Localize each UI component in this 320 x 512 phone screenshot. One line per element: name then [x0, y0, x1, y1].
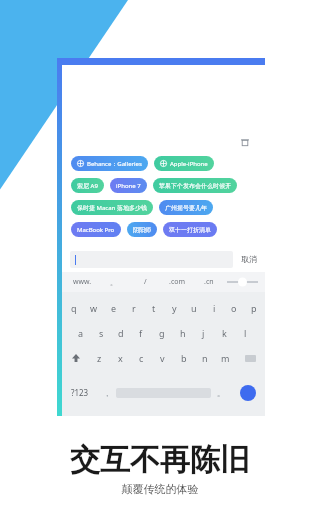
staticText: Behance：Galleries: [87, 160, 142, 168]
staticText: www.: [73, 277, 92, 287]
button[interactable]: www.: [67, 272, 98, 292]
button[interactable]: j: [193, 322, 214, 344]
staticText: 取消: [241, 254, 257, 264]
staticText: w: [90, 302, 98, 314]
button[interactable]: iPhone 7: [110, 178, 147, 193]
staticText: .cn: [204, 277, 214, 287]
button[interactable]: 双十一打折清单: [163, 222, 217, 237]
staticText: 。: [110, 278, 117, 287]
button[interactable]: e: [104, 297, 124, 319]
staticText: v: [160, 352, 165, 364]
staticText: 索尼 A9: [77, 182, 98, 190]
button[interactable]: Clear history: [238, 135, 252, 149]
staticText: 阴阳师: [133, 226, 151, 234]
button[interactable]: 广州摇号要几年: [159, 200, 213, 215]
staticText: 。: [217, 388, 225, 398]
staticText: ，: [103, 388, 111, 398]
staticText: q: [71, 302, 77, 314]
button[interactable]: b: [173, 347, 194, 369]
staticText: b: [181, 352, 187, 364]
button[interactable]: c: [131, 347, 152, 369]
button[interactable]: Shift: [62, 347, 89, 369]
button[interactable]: y: [164, 297, 184, 319]
button[interactable]: r: [124, 297, 144, 319]
button[interactable]: MacBook Pro: [71, 222, 121, 237]
staticText: iPhone 7: [116, 182, 141, 190]
staticText: a: [78, 327, 84, 339]
staticText: f: [139, 327, 143, 339]
button[interactable]: Behance：Galleries: [71, 156, 148, 171]
staticText: p: [251, 302, 257, 314]
staticText: 交互不再陈旧: [0, 441, 320, 479]
staticText: i: [213, 302, 216, 314]
button[interactable]: Search: [240, 385, 256, 401]
button[interactable]: .cn: [193, 272, 225, 292]
button[interactable]: l: [235, 322, 256, 344]
staticText: s: [99, 327, 104, 339]
staticText: d: [118, 327, 124, 339]
button[interactable]: h: [172, 322, 193, 344]
staticText: 保时捷 Macan 落地多少钱: [77, 204, 147, 212]
staticText: z: [97, 352, 102, 364]
button[interactable]: /: [129, 272, 161, 292]
button[interactable]: s: [91, 322, 111, 344]
staticText: 双十一打折清单: [169, 226, 211, 234]
button[interactable]: 取消: [241, 254, 257, 264]
staticText: e: [111, 302, 117, 314]
staticText: c: [139, 352, 144, 364]
button[interactable]: n: [194, 347, 215, 369]
staticText: /: [144, 277, 147, 287]
button[interactable]: Apple-iPhone: [154, 156, 214, 171]
staticText: .com: [169, 277, 186, 287]
button[interactable]: w: [84, 297, 104, 319]
button[interactable]: m: [215, 347, 236, 369]
button[interactable]: q: [63, 297, 84, 319]
button[interactable]: Backspace: [236, 347, 265, 369]
staticText: m: [221, 352, 230, 364]
staticText: 广州摇号要几年: [165, 204, 207, 212]
button[interactable]: ?123: [62, 369, 97, 416]
staticText: r: [132, 302, 136, 314]
button[interactable]: [70, 251, 233, 268]
button[interactable]: f: [131, 322, 151, 344]
staticText: 颠覆传统的体验: [0, 482, 320, 496]
button[interactable]: i: [204, 297, 224, 319]
staticText: j: [202, 327, 205, 339]
staticText: g: [159, 327, 165, 339]
button[interactable]: Adjust: [225, 272, 260, 292]
staticText: Apple-iPhone: [170, 160, 208, 168]
staticText: ?123: [71, 387, 89, 398]
button[interactable]: g: [151, 322, 172, 344]
button[interactable]: d: [111, 322, 131, 344]
button[interactable]: k: [214, 322, 235, 344]
button[interactable]: u: [184, 297, 204, 319]
staticText: y: [172, 302, 177, 314]
button[interactable]: p: [244, 297, 264, 319]
staticText: 苹果下个发布会什么时候开: [159, 182, 231, 190]
staticText: h: [180, 327, 186, 339]
button[interactable]: v: [152, 347, 173, 369]
button[interactable]: 保时捷 Macan 落地多少钱: [71, 200, 153, 215]
button[interactable]: 阴阳师: [127, 222, 157, 237]
staticText: u: [191, 302, 197, 314]
button[interactable]: a: [71, 322, 91, 344]
staticText: l: [244, 327, 247, 339]
button[interactable]: .com: [161, 272, 193, 292]
staticText: o: [231, 302, 237, 314]
staticText: k: [222, 327, 227, 339]
staticText: x: [118, 352, 123, 364]
button[interactable]: o: [224, 297, 244, 319]
button[interactable]: 索尼 A9: [71, 178, 104, 193]
button[interactable]: 苹果下个发布会什么时候开: [153, 178, 237, 193]
button[interactable]: x: [110, 347, 131, 369]
staticText: t: [152, 302, 156, 314]
button[interactable]: z: [89, 347, 110, 369]
button[interactable]: t: [144, 297, 164, 319]
staticText: MacBook Pro: [77, 226, 115, 234]
staticText: n: [202, 352, 208, 364]
